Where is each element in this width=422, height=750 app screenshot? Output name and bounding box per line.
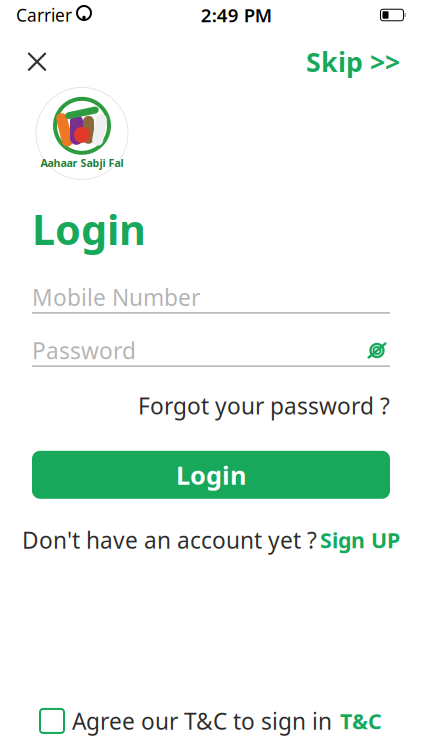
staticText: Forgot your password ? [138, 391, 390, 421]
staticText: Login [176, 458, 246, 492]
staticText: Aahaar Sabji Fal [40, 156, 123, 170]
button[interactable]: Login [32, 451, 390, 499]
staticText: Agree our T&C to sign in [72, 706, 332, 736]
button[interactable]: Skip >> [306, 44, 400, 79]
button[interactable]: Forgot your password ? [138, 391, 390, 421]
button[interactable]: Show password [364, 339, 390, 361]
staticText: Skip >> [306, 44, 400, 79]
staticText: T&C [340, 707, 382, 735]
staticText: Don't have an account yet ? [22, 525, 317, 555]
button[interactable]: Close [22, 47, 52, 77]
button[interactable]: Don't have an account yet ? [22, 525, 400, 555]
staticText: Mobile Number [32, 282, 200, 312]
button[interactable]: Agree our T&C to sign in [40, 706, 382, 736]
staticText: 2:49 PM [201, 3, 272, 27]
staticText: Carrier [16, 3, 72, 26]
staticText: Password [32, 335, 136, 365]
staticText: Login [32, 201, 146, 256]
staticText: Sign UP [320, 526, 400, 554]
